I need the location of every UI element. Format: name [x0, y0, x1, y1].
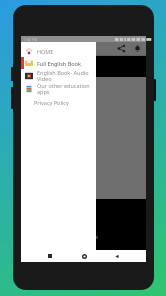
button[interactable]: Full English Book	[21, 57, 96, 69]
button[interactable]: Privacy Policy	[21, 95, 96, 110]
button[interactable]: Our other education apps	[21, 82, 96, 95]
staticText: Our other education apps	[37, 82, 94, 95]
button[interactable]: English Book- Audio Video	[21, 69, 96, 82]
button[interactable]: Home	[79, 251, 89, 261]
staticText: Full English Book	[37, 60, 81, 67]
staticText: HOME	[37, 48, 54, 55]
staticText: Privacy Policy	[34, 99, 69, 106]
button[interactable]: Notifications	[133, 44, 142, 53]
button[interactable]: Back	[112, 251, 122, 261]
staticText: English Book- Audio Video	[37, 69, 94, 82]
button[interactable]: Recents	[45, 251, 55, 261]
button[interactable]: HOME	[21, 45, 96, 57]
button[interactable]: Share	[117, 44, 126, 53]
staticText: 7:44 PM	[24, 37, 38, 42]
